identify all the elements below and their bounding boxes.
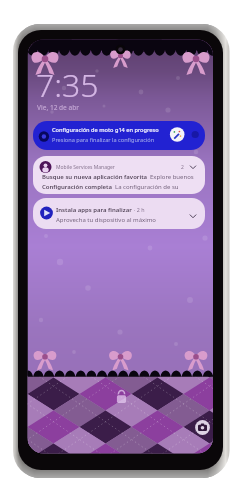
staticText: Busque su nueva aplicación favorita [42, 173, 148, 181]
button[interactable]: Unlock [113, 387, 130, 404]
staticText: 2 [181, 164, 184, 171]
staticText: Configuración de moto g14 en progreso [52, 126, 159, 134]
button[interactable]: Instala apps para finalizar [33, 198, 205, 229]
staticText: Explore buenos juegos y h… [150, 173, 200, 181]
staticText: 7:35 [36, 63, 99, 107]
button[interactable]: Camera [194, 419, 211, 436]
staticText: Instala apps para finalizar [56, 206, 132, 214]
staticText: Configuración completa [42, 183, 113, 191]
staticText: Mobile Services Manager [56, 164, 115, 171]
staticText: La configuración de su dispositivo est… [115, 183, 200, 191]
button[interactable]: Configuración de moto g14 en progreso [33, 121, 205, 150]
staticText: Vie, 12 de abr [37, 103, 80, 112]
button[interactable]: Mobile Services Manager [33, 156, 205, 194]
staticText: Aprovecha tu dispositivo al máximo [56, 216, 156, 224]
staticText: · 2 h [134, 206, 145, 213]
staticText: Presiona para finalizar la configuración [52, 136, 155, 144]
